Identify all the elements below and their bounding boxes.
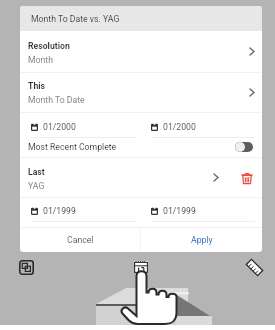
- button[interactable]: Delete: [239, 170, 255, 186]
- button[interactable]: Resolution: [20, 31, 262, 72]
- staticText: YAG: [28, 181, 45, 191]
- button[interactable]: 01/1999: [31, 203, 136, 219]
- staticText: Apply: [191, 235, 213, 245]
- button[interactable]: This: [20, 72, 262, 112]
- button[interactable]: 01/2000: [151, 119, 255, 135]
- button[interactable]: Measure: [246, 259, 263, 276]
- button[interactable]: Overview: [19, 260, 34, 275]
- button[interactable]: Apply: [141, 228, 262, 252]
- staticText: Last: [28, 167, 45, 177]
- staticText: Month: [28, 55, 53, 65]
- staticText: Month To Date vs. YAG: [31, 14, 120, 24]
- staticText: 01/2000: [163, 122, 196, 132]
- button[interactable]: Calendar: [134, 261, 148, 273]
- staticText: 01/1999: [163, 206, 196, 216]
- button[interactable]: 01/2000: [31, 119, 136, 135]
- staticText: 01/1999: [43, 206, 76, 216]
- staticText: 01/2000: [43, 122, 76, 132]
- staticText: Resolution: [28, 41, 70, 51]
- button[interactable]: 01/1999: [151, 203, 255, 219]
- button[interactable]: Last: [20, 158, 262, 197]
- button[interactable]: Cancel: [20, 228, 140, 252]
- staticText: Most Recent Complete: [28, 142, 235, 152]
- staticText: Cancel: [67, 235, 94, 245]
- staticText: Month To Date: [28, 95, 85, 105]
- staticText: This: [28, 81, 46, 91]
- button[interactable]: Most Recent Complete: [20, 139, 262, 155]
